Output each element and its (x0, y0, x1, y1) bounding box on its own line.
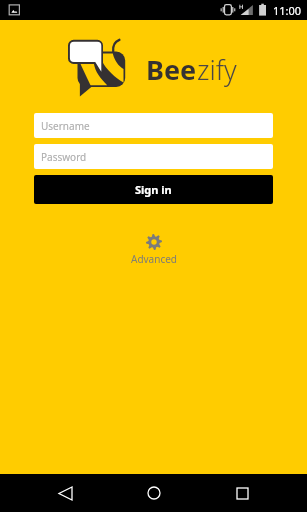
staticText: Username (41, 119, 90, 133)
staticText: 11:00 (273, 3, 302, 18)
button[interactable]: Advanced (121, 232, 187, 268)
button[interactable]: Back (41, 474, 89, 512)
button[interactable]: Sign in (34, 175, 273, 204)
button[interactable]: Home (130, 474, 178, 512)
button[interactable]: Username (34, 113, 273, 138)
staticText: zify (197, 51, 237, 88)
button[interactable]: Password (34, 144, 273, 169)
staticText: Advanced (131, 252, 177, 266)
button[interactable]: Recents (218, 474, 266, 512)
staticText: Sign in (135, 182, 172, 197)
staticText: Bee (146, 51, 197, 88)
staticText: Password (41, 150, 87, 164)
